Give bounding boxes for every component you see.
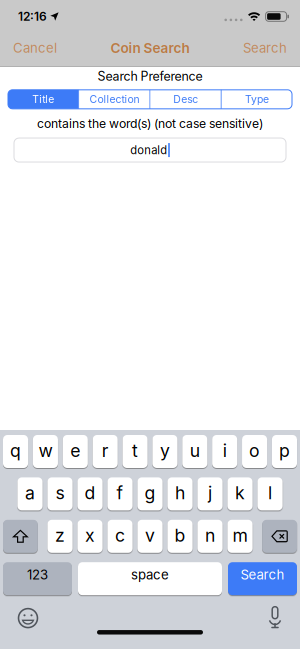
- button[interactable]: Type: [222, 90, 292, 109]
- staticText: y: [160, 440, 170, 461]
- staticText: x: [85, 525, 95, 546]
- staticText: h: [175, 482, 185, 504]
- staticText: l: [268, 482, 272, 504]
- staticText: f: [116, 482, 123, 504]
- staticText: u: [190, 440, 200, 461]
- staticText: a: [25, 482, 35, 504]
- button[interactable]: j: [197, 477, 223, 510]
- button[interactable]: m: [227, 520, 253, 553]
- button[interactable]: b: [167, 520, 193, 553]
- button[interactable]: Desc: [150, 90, 221, 109]
- button[interactable]: o: [242, 435, 267, 468]
- staticText: j: [208, 482, 212, 504]
- button[interactable]: Cancel: [13, 40, 57, 56]
- button[interactable]: v: [137, 520, 163, 553]
- button[interactable]: s: [47, 477, 73, 510]
- button[interactable]: Shift: [3, 520, 38, 553]
- staticText: k: [235, 482, 245, 504]
- staticText: r: [102, 440, 109, 461]
- button[interactable]: space: [78, 562, 222, 595]
- button[interactable]: e: [63, 435, 88, 468]
- staticText: o: [249, 440, 260, 461]
- staticText: 12:16: [18, 9, 47, 24]
- button[interactable]: a: [17, 477, 43, 510]
- staticText: n: [205, 525, 215, 546]
- staticText: b: [174, 525, 185, 546]
- button[interactable]: Search: [228, 562, 297, 595]
- staticText: Desc: [173, 93, 198, 106]
- button[interactable]: k: [227, 477, 253, 510]
- button[interactable]: h: [167, 477, 193, 510]
- button[interactable]: n: [197, 520, 223, 553]
- staticText: d: [84, 482, 95, 504]
- button[interactable]: u: [182, 435, 207, 468]
- staticText: i: [223, 440, 227, 461]
- staticText: Collection: [89, 93, 139, 106]
- staticText: Cancel: [13, 40, 57, 56]
- staticText: Search Preference: [97, 69, 202, 84]
- button[interactable]: d: [77, 477, 103, 510]
- staticText: donald: [130, 143, 167, 157]
- staticText: g: [144, 482, 155, 504]
- button[interactable]: q: [3, 435, 28, 468]
- staticText: space: [131, 567, 169, 583]
- button[interactable]: Title: [8, 90, 78, 109]
- staticText: Search: [240, 567, 284, 583]
- button[interactable]: t: [122, 435, 148, 468]
- button[interactable]: y: [152, 435, 177, 468]
- button[interactable]: Dictation: [268, 608, 282, 629]
- button[interactable]: i: [212, 435, 237, 468]
- staticText: Type: [245, 93, 269, 106]
- staticText: q: [10, 440, 21, 461]
- button[interactable]: l: [257, 477, 283, 510]
- button[interactable]: Emoji: [18, 608, 38, 628]
- button[interactable]: Delete: [262, 520, 297, 553]
- button[interactable]: Collection: [79, 90, 149, 109]
- button[interactable]: r: [93, 435, 118, 468]
- button[interactable]: Search: [243, 40, 287, 56]
- staticText: Search: [243, 40, 287, 56]
- button[interactable]: w: [33, 435, 58, 468]
- staticText: e: [70, 440, 80, 461]
- staticText: Title: [32, 93, 54, 106]
- staticText: w: [38, 440, 52, 461]
- staticText: z: [55, 525, 65, 546]
- button[interactable]: p: [272, 435, 297, 468]
- staticText: c: [115, 525, 125, 546]
- staticText: 123: [27, 567, 48, 583]
- button[interactable]: c: [107, 520, 133, 553]
- staticText: t: [132, 440, 138, 461]
- staticText: p: [279, 440, 290, 461]
- staticText: contains the word(s) (not case sensitive…: [37, 116, 263, 131]
- staticText: Coin Search: [110, 40, 189, 56]
- staticText: m: [232, 525, 247, 546]
- button[interactable]: 123: [3, 562, 72, 595]
- button[interactable]: f: [107, 477, 133, 510]
- staticText: v: [145, 525, 155, 546]
- button[interactable]: z: [47, 520, 73, 553]
- staticText: s: [55, 482, 64, 504]
- button[interactable]: g: [137, 477, 163, 510]
- button[interactable]: x: [77, 520, 103, 553]
